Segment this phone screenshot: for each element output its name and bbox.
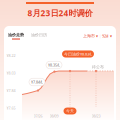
staticText: 待公布 (92, 65, 104, 69)
staticText: 8月23日24时调价 (27, 7, 92, 19)
staticText: 上海市 ▾ (83, 33, 98, 38)
staticText: 08/23 (91, 113, 100, 119)
button[interactable]: 今天 (63, 108, 76, 114)
staticText: 今日油价¥8.83/L (64, 51, 92, 57)
button[interactable]: 上海市 ▾ (83, 33, 98, 38)
staticText: 油价走势 (8, 32, 24, 37)
staticText: 07/26 (33, 113, 42, 119)
staticText: 油价日历 (31, 32, 47, 37)
staticText: 92# ▾ (102, 33, 112, 39)
staticText: ¥7.65 (6, 105, 15, 111)
staticText: 08/09 (49, 113, 58, 119)
button[interactable]: 油价走势 (8, 32, 24, 39)
button[interactable]: 92# ▾ (102, 33, 112, 39)
staticText: ¥8.03 (6, 70, 15, 76)
staticText: 今天 (66, 109, 74, 113)
staticText: | (99, 33, 101, 39)
staticText: ¥8.22 (6, 53, 15, 58)
button[interactable]: 油价日历 (31, 32, 47, 39)
staticText: ¥7.84/L (31, 79, 43, 85)
staticText: ¥8.35/L (48, 62, 60, 68)
staticText: ¥7.84 (6, 88, 15, 93)
